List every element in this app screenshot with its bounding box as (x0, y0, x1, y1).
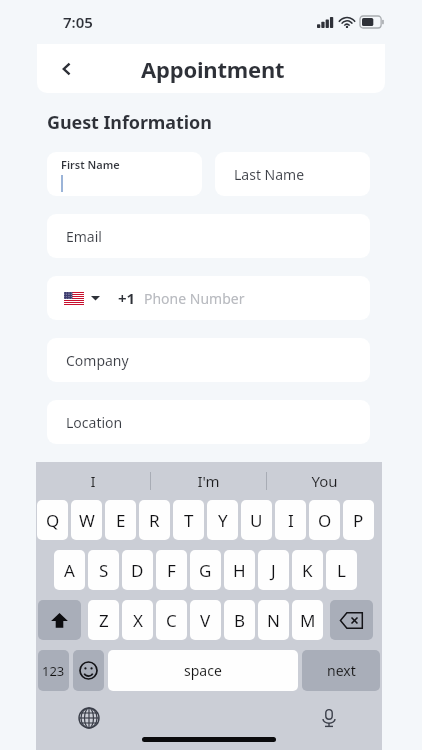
staticText: L (337, 559, 346, 582)
staticText: 7:05 (63, 12, 93, 32)
button[interactable]: Z (88, 600, 119, 640)
staticText: E (116, 509, 126, 532)
button[interactable]: H (224, 550, 255, 590)
staticText: Q (46, 509, 60, 532)
button[interactable]: E (105, 500, 136, 540)
staticText: W (79, 509, 95, 532)
staticText: First Name (61, 157, 120, 172)
button[interactable]: C (156, 600, 187, 640)
button[interactable]: R (139, 500, 170, 540)
staticText: U (250, 509, 263, 532)
staticText: G (199, 559, 212, 582)
button[interactable]: D (122, 550, 153, 590)
button[interactable]: S (88, 550, 119, 590)
staticText: I (90, 471, 96, 491)
button[interactable]: B (224, 600, 255, 640)
staticText: C (166, 609, 177, 632)
staticText: R (149, 509, 160, 532)
staticText: N (267, 609, 280, 632)
button[interactable]: U (241, 500, 272, 540)
button[interactable]: Company (47, 338, 370, 382)
button[interactable]: L (326, 550, 357, 590)
button[interactable]: Y (207, 500, 238, 540)
button[interactable]: First Name (47, 152, 202, 196)
button[interactable]: J (258, 550, 289, 590)
staticText: T (184, 509, 194, 532)
button[interactable]: Email (47, 214, 370, 258)
staticText: A (64, 559, 75, 582)
button[interactable]: W (71, 500, 102, 540)
staticText: D (131, 559, 144, 582)
button[interactable]: Last Name (215, 152, 370, 196)
staticText: I'm (197, 471, 220, 491)
staticText: Y (218, 509, 228, 532)
button[interactable]: V (190, 600, 221, 640)
button[interactable]: T (173, 500, 204, 540)
button[interactable]: G (190, 550, 221, 590)
button[interactable]: O (309, 500, 340, 540)
button[interactable]: Change keyboard (74, 703, 104, 733)
button[interactable]: Shift (38, 600, 81, 640)
staticText: S (99, 559, 109, 582)
button[interactable]: Location (47, 400, 370, 444)
button[interactable]: Q (37, 500, 68, 540)
button[interactable]: I (36, 462, 150, 500)
button[interactable]: space (108, 650, 298, 691)
staticText: M (300, 609, 316, 632)
button[interactable]: X (122, 600, 153, 640)
staticText: You (311, 471, 338, 491)
staticText: X (133, 609, 143, 632)
button[interactable]: K (292, 550, 323, 590)
staticText: F (167, 559, 176, 582)
staticText: H (233, 559, 246, 582)
button[interactable]: +1 (47, 276, 370, 320)
button[interactable]: Back (47, 49, 87, 89)
button[interactable]: Voice input (314, 703, 344, 733)
staticText: V (200, 609, 211, 632)
button[interactable]: 123 (38, 650, 69, 691)
button[interactable]: A (54, 550, 85, 590)
button[interactable]: P (343, 500, 374, 540)
staticText: +1 (118, 288, 136, 308)
staticText: next (327, 661, 356, 680)
staticText: 123 (42, 662, 65, 680)
staticText: Phone Number (144, 289, 245, 308)
staticText: B (234, 609, 246, 632)
staticText: Guest Information (47, 110, 212, 135)
staticText: Location (66, 413, 123, 432)
staticText: Z (99, 609, 109, 632)
button[interactable]: Emoji (73, 650, 104, 691)
button[interactable]: You (267, 462, 382, 500)
button[interactable]: next (302, 650, 380, 691)
staticText: Email (66, 227, 102, 246)
button[interactable]: Backspace (330, 600, 373, 640)
staticText: Appointment (141, 54, 285, 84)
staticText: J (271, 559, 276, 582)
staticText: Company (66, 351, 129, 370)
staticText: P (353, 509, 364, 532)
button[interactable]: I (275, 500, 306, 540)
button[interactable]: M (292, 600, 323, 640)
staticText: space (184, 661, 222, 680)
staticText: Last Name (234, 165, 305, 184)
staticText: I (288, 509, 294, 532)
button[interactable]: N (258, 600, 289, 640)
staticText: K (302, 559, 313, 582)
staticText: O (318, 509, 332, 532)
button[interactable]: I'm (151, 462, 266, 500)
button[interactable]: F (156, 550, 187, 590)
